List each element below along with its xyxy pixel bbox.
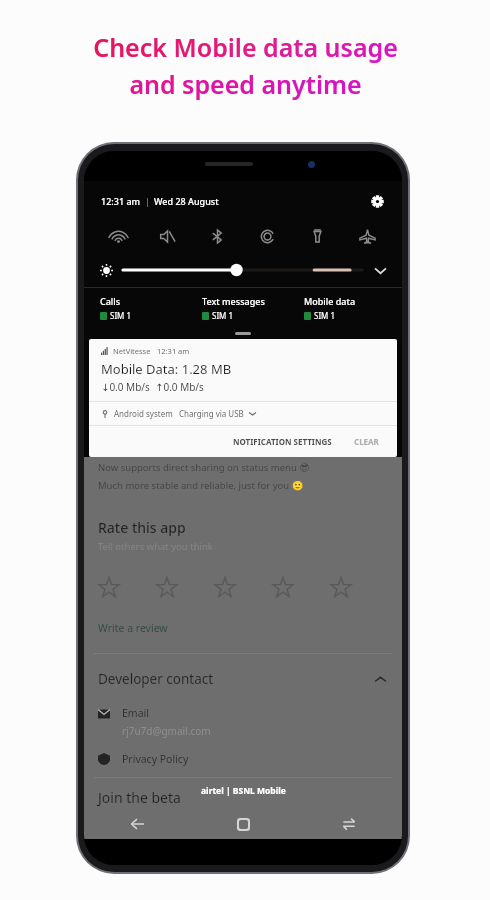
staticText: Mobile Data: 1.28 MB: [101, 360, 232, 378]
button[interactable]: Rate 1 stars: [98, 571, 156, 605]
button[interactable]: Rate 4 stars: [272, 571, 330, 605]
staticText: Android system: [114, 408, 173, 419]
staticText: NetVitesse: [113, 346, 151, 356]
staticText: ↓0.0 Mb/s ↑0.0 Mb/s: [101, 380, 204, 394]
button[interactable]: Rate 5 stars: [330, 571, 388, 605]
button[interactable]: Developer contact: [84, 670, 402, 688]
button[interactable]: Bluetooth: [192, 221, 242, 251]
staticText: Write a review: [98, 621, 168, 635]
staticText: Calls: [100, 295, 121, 307]
button[interactable]: Mobile data: [294, 295, 396, 321]
staticText: SIM 1: [110, 310, 132, 321]
staticText: Text messages: [202, 295, 265, 307]
staticText: Mobile data: [304, 295, 356, 307]
staticText: NOTIFICATION SETTINGS: [233, 436, 332, 447]
staticText: CLEAR: [354, 436, 379, 447]
button[interactable]: Sound: [143, 221, 192, 251]
button[interactable]: Rate 3 stars: [214, 571, 272, 605]
button[interactable]: Airplane mode: [342, 221, 392, 251]
staticText: Rate this app: [98, 518, 186, 537]
staticText: Email: [122, 706, 149, 720]
button[interactable]: Calls: [90, 295, 192, 321]
button[interactable]: Write a review: [84, 619, 168, 637]
button[interactable]: Back: [84, 809, 190, 839]
button[interactable]: Text messages: [192, 295, 294, 321]
staticText: Wed 28 August: [154, 195, 219, 207]
staticText: Now supports direct sharing on status me…: [98, 461, 310, 474]
staticText: Check Mobile data usage: [93, 30, 398, 64]
button[interactable]: Settings: [366, 190, 388, 212]
button[interactable]: Brightness: [123, 263, 362, 277]
staticText: SIM 1: [212, 310, 234, 321]
staticText: 12:31 am: [157, 346, 190, 356]
staticText: Privacy Policy: [122, 752, 189, 766]
staticText: Developer contact: [98, 670, 214, 688]
staticText: 12:31 am: [101, 195, 141, 207]
button[interactable]: Wi-Fi: [94, 221, 143, 251]
button[interactable]: NetVitesse: [89, 339, 397, 457]
staticText: and speed anytime: [129, 67, 362, 101]
staticText: Tell others what you think: [98, 540, 213, 553]
staticText: Much more stable and reliable, just for …: [98, 479, 304, 492]
button[interactable]: Flashlight: [292, 221, 342, 251]
button[interactable]: Email: [84, 706, 402, 738]
staticText: airtel | BSNL Mobile: [201, 785, 286, 797]
staticText: SIM 1: [314, 310, 336, 321]
staticText: Join the beta: [98, 788, 181, 807]
button[interactable]: CLEAR: [350, 432, 383, 451]
button[interactable]: NOTIFICATION SETTINGS: [229, 432, 336, 451]
button[interactable]: Expand: [370, 260, 390, 280]
button[interactable]: Rate 2 stars: [156, 571, 214, 605]
staticText: |: [141, 196, 154, 207]
staticText: Charging via USB: [179, 408, 244, 419]
button[interactable]: Privacy Policy: [84, 752, 402, 766]
button[interactable]: Home: [190, 809, 296, 839]
staticText: rj7u7d@gmail.com: [122, 724, 211, 738]
button[interactable]: Recents: [296, 809, 402, 839]
button[interactable]: Auto rotate: [242, 221, 292, 251]
